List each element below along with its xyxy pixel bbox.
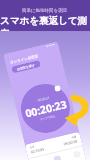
- staticText: 今日: [29, 145, 35, 150]
- staticText: 今週: [71, 135, 77, 140]
- button[interactable]: オンライン自習室: [3, 41, 87, 160]
- staticText: 02:10:05: [30, 146, 45, 154]
- staticText: 00:20:23: [24, 97, 68, 120]
- staticText: オンライン自習室: [10, 54, 39, 65]
- staticText: 00:20:21: [37, 96, 50, 102]
- staticText: スマホを裏返して測定: [0, 15, 90, 31]
- staticText: 集中モード: [46, 136, 59, 142]
- other: Flip the phone: [64, 97, 88, 127]
- staticText: 09:30:00: [63, 138, 78, 146]
- staticText: 簡単に勉強時間を測定: [22, 8, 68, 14]
- button[interactable]: 簡単に勉強時間を測定: [0, 0, 90, 31]
- button[interactable]: Tab 3: [73, 150, 81, 158]
- staticText: 自習室を探す: [16, 63, 36, 71]
- button[interactable]: Tab 2: [53, 155, 62, 160]
- button[interactable]: 自習室を探す: [11, 60, 41, 74]
- staticText: タップで停止: [40, 115, 56, 121]
